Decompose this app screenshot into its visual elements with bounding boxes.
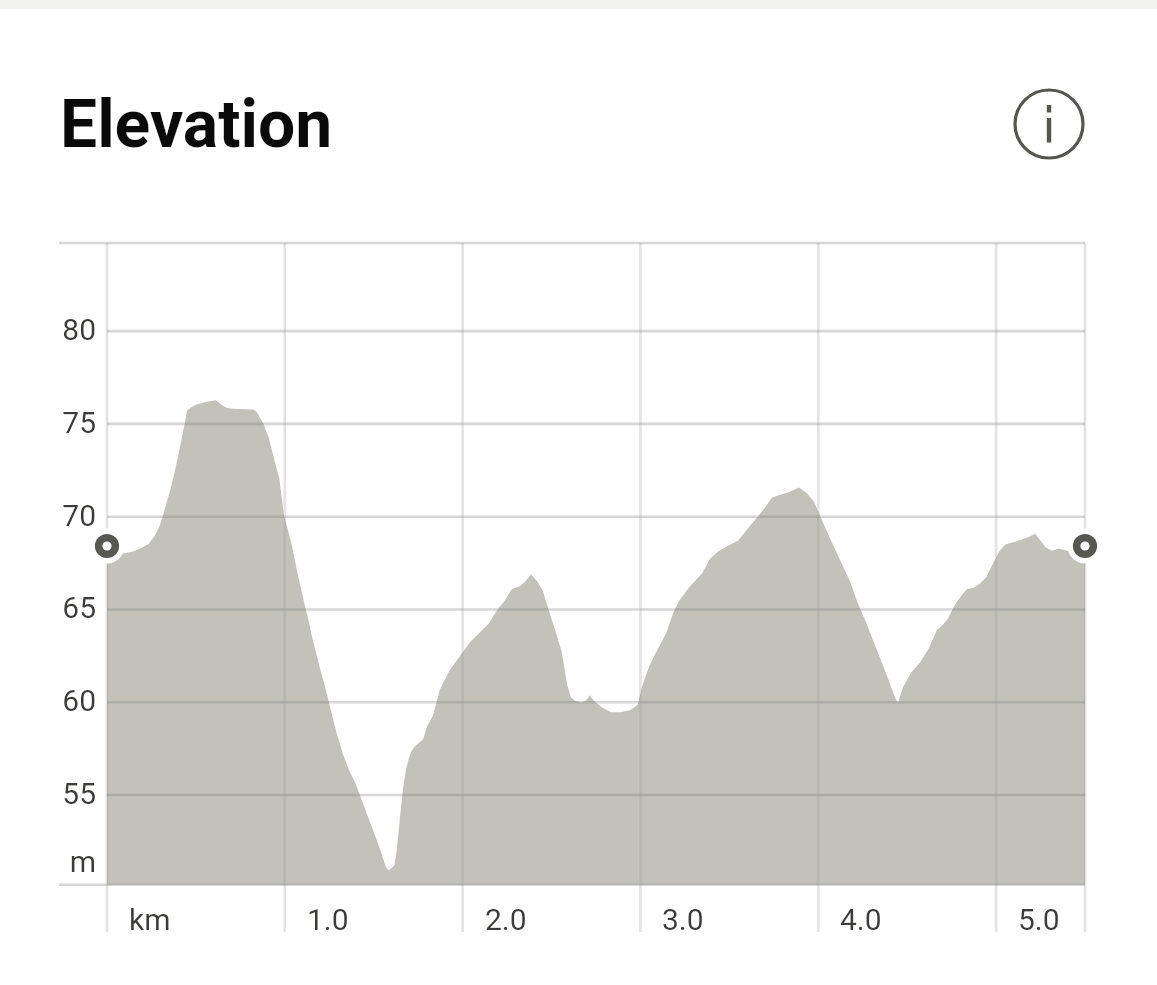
staticText: 75 [2,405,96,440]
staticText: 60 [2,683,96,718]
staticText: 1.0 [307,902,349,937]
button[interactable]: Info [1012,87,1086,161]
staticText: 4.0 [840,902,882,937]
staticText: 3.0 [662,902,704,937]
staticText: m [2,844,96,879]
staticText: 2.0 [485,902,527,937]
staticText: 65 [2,590,96,625]
staticText: 70 [2,498,96,533]
staticText: km [129,902,171,937]
staticText: 55 [2,776,96,811]
staticText: Elevation [60,86,333,163]
staticText: 80 [2,312,96,347]
staticText: 5.0 [1018,902,1060,937]
